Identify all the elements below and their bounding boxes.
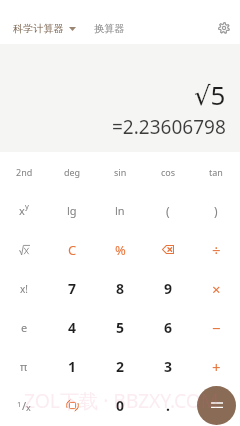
button[interactable]: deg — [48, 152, 96, 191]
button[interactable]: 9 — [144, 269, 192, 308]
button[interactable]: tan — [192, 152, 240, 191]
staticText: 5 — [116, 318, 125, 337]
staticText: 9 — [164, 279, 173, 298]
staticText: . — [166, 396, 170, 415]
staticText: + — [212, 357, 221, 377]
staticText: 8 — [116, 279, 125, 298]
button[interactable]: x! — [0, 269, 48, 308]
button[interactable]: 0 — [96, 386, 144, 425]
staticText: / — [22, 398, 27, 413]
staticText: ln — [115, 203, 125, 218]
staticText: 6 — [164, 318, 173, 337]
button[interactable]: ) — [192, 191, 240, 230]
staticText: x! — [20, 282, 28, 296]
staticText: sin — [114, 166, 127, 178]
staticText: ZOL下载 · BBZXY.COM — [24, 387, 219, 414]
button[interactable]: 7 — [48, 269, 96, 308]
staticText: 3 — [164, 357, 173, 376]
staticText: √5 — [194, 77, 226, 112]
button[interactable]: ( — [144, 191, 192, 230]
button[interactable]: ÷ — [192, 230, 240, 269]
staticText: ( — [166, 203, 170, 219]
staticText: 1 — [68, 357, 77, 376]
button[interactable]: ln — [96, 191, 144, 230]
staticText: lg — [67, 203, 77, 218]
button[interactable]: C — [48, 230, 96, 269]
button[interactable] — [0, 230, 48, 269]
button[interactable]: 换算器 — [94, 16, 125, 41]
button[interactable]: 2nd — [0, 152, 48, 191]
staticText: y — [25, 201, 29, 211]
staticText: x — [26, 401, 31, 413]
button[interactable]: sin — [96, 152, 144, 191]
staticText: 科学计算器 — [13, 22, 64, 35]
button[interactable]: + — [192, 347, 240, 386]
staticText: π — [20, 359, 28, 374]
staticText: ) — [214, 203, 218, 219]
staticText: deg — [64, 166, 81, 178]
staticText: C — [68, 241, 77, 259]
staticText: × — [212, 279, 221, 299]
staticText: % — [115, 241, 126, 259]
button[interactable]: 8 — [96, 269, 144, 308]
button[interactable]: π — [0, 347, 48, 386]
button[interactable]: − — [192, 308, 240, 347]
button[interactable]: e — [0, 308, 48, 347]
staticText: tan — [209, 166, 223, 178]
button[interactable]: 4 — [48, 308, 96, 347]
staticText: 1 — [17, 399, 22, 409]
button[interactable]: 1 — [48, 347, 96, 386]
button[interactable]: 2 — [96, 347, 144, 386]
button[interactable]: 3 — [144, 347, 192, 386]
staticText: 2 — [116, 357, 125, 376]
staticText: 7 — [68, 279, 77, 298]
button[interactable]: 科学计算器 — [13, 16, 76, 41]
staticText: x — [19, 203, 25, 218]
button[interactable]: x — [0, 191, 48, 230]
button[interactable]: Equals — [197, 386, 236, 425]
staticText: ÷ — [212, 240, 221, 260]
staticText: e — [21, 320, 28, 335]
button[interactable]: lg — [48, 191, 96, 230]
button[interactable]: Settings — [210, 14, 238, 42]
staticText: − — [212, 318, 221, 338]
button[interactable]: 5 — [96, 308, 144, 347]
button[interactable]: Backspace — [144, 230, 192, 269]
button[interactable]: cos — [144, 152, 192, 191]
button[interactable]: . — [144, 386, 192, 425]
staticText: 2nd — [16, 166, 33, 178]
button[interactable]: Switch mode — [48, 386, 96, 425]
button[interactable]: 6 — [144, 308, 192, 347]
staticText: =2.23606798 — [112, 114, 226, 140]
button[interactable]: % — [96, 230, 144, 269]
button[interactable]: × — [192, 269, 240, 308]
staticText: 0 — [116, 396, 125, 415]
staticText: cos — [161, 166, 176, 178]
staticText: 4 — [68, 318, 77, 337]
button[interactable]: 1 — [0, 386, 48, 425]
